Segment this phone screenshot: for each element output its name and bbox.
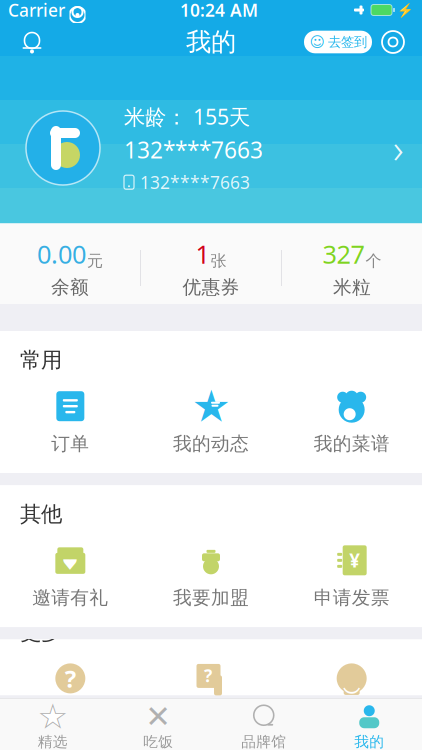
staticText: 优惠券: [182, 276, 239, 299]
button[interactable]: ?: [141, 657, 281, 731]
staticText: 我的: [354, 733, 384, 750]
button[interactable]: ★: [0, 699, 105, 750]
button[interactable]: 我要加盟: [141, 539, 281, 613]
staticText: 我的菜谱: [314, 432, 390, 455]
staticText: ‿: [343, 656, 361, 695]
button[interactable]: 品牌馆: [211, 699, 316, 750]
button[interactable]: ♥: [0, 539, 141, 613]
staticText: ☺: [309, 34, 324, 50]
staticText: 个: [365, 251, 381, 271]
button[interactable]: ★: [141, 385, 281, 459]
staticText: 米粒: [333, 276, 371, 299]
staticText: 关于我们: [314, 704, 390, 727]
button[interactable]: 通知: [12, 22, 52, 62]
button[interactable]: ¥: [281, 539, 422, 613]
staticText: 1: [195, 237, 209, 271]
staticText: ¥: [349, 548, 360, 573]
staticText: ☆: [37, 697, 68, 736]
staticText: 132****7663: [140, 171, 250, 194]
staticText: 我的: [186, 26, 236, 57]
staticText: 去签到: [328, 34, 367, 50]
button[interactable]: 1: [141, 223, 281, 313]
staticText: 订单: [51, 432, 89, 455]
staticText: 申请发票: [314, 586, 390, 609]
staticText: 余额: [51, 276, 89, 299]
button[interactable]: 0.00: [0, 223, 140, 313]
staticText: ⚡: [397, 2, 414, 18]
staticText: 132****7663: [124, 135, 263, 165]
button[interactable]: ‿: [281, 657, 422, 731]
staticText: 常用: [20, 347, 62, 373]
staticText: ?: [204, 664, 212, 687]
staticText: 10:24 AM: [180, 0, 258, 21]
button[interactable]: 订单: [0, 385, 141, 459]
staticText: 吃饭: [143, 733, 173, 750]
staticText: ★: [191, 381, 230, 431]
staticText: ✕: [145, 699, 171, 734]
staticText: ?: [65, 662, 76, 694]
staticText: 米龄： 155天: [124, 102, 250, 131]
staticText: Carrier: [8, 0, 65, 21]
button[interactable]: ✕: [105, 699, 211, 750]
staticText: 0.00: [37, 237, 86, 271]
staticText: 327: [322, 237, 364, 271]
button[interactable]: ☺: [304, 31, 372, 53]
button[interactable]: ?: [0, 657, 141, 731]
staticText: ★: [37, 697, 68, 736]
staticText: 精选: [38, 733, 68, 750]
button[interactable]: 设置: [376, 25, 410, 59]
button[interactable]: 327: [282, 223, 422, 313]
button[interactable]: 我的: [316, 699, 422, 750]
staticText: ♥: [62, 553, 79, 574]
staticText: 邀请有礼: [32, 586, 108, 609]
staticText: 常见问题: [32, 704, 108, 727]
staticText: 更多: [20, 619, 62, 645]
staticText: 张: [210, 251, 226, 271]
button[interactable]: 我的菜谱: [281, 385, 422, 459]
staticText: ›: [393, 121, 404, 174]
staticText: 其他: [20, 501, 62, 527]
staticText: 元: [87, 251, 103, 271]
staticText: 品牌馆: [241, 733, 286, 750]
staticText: 我要加盟: [173, 586, 249, 609]
staticText: 我的动态: [173, 432, 249, 455]
